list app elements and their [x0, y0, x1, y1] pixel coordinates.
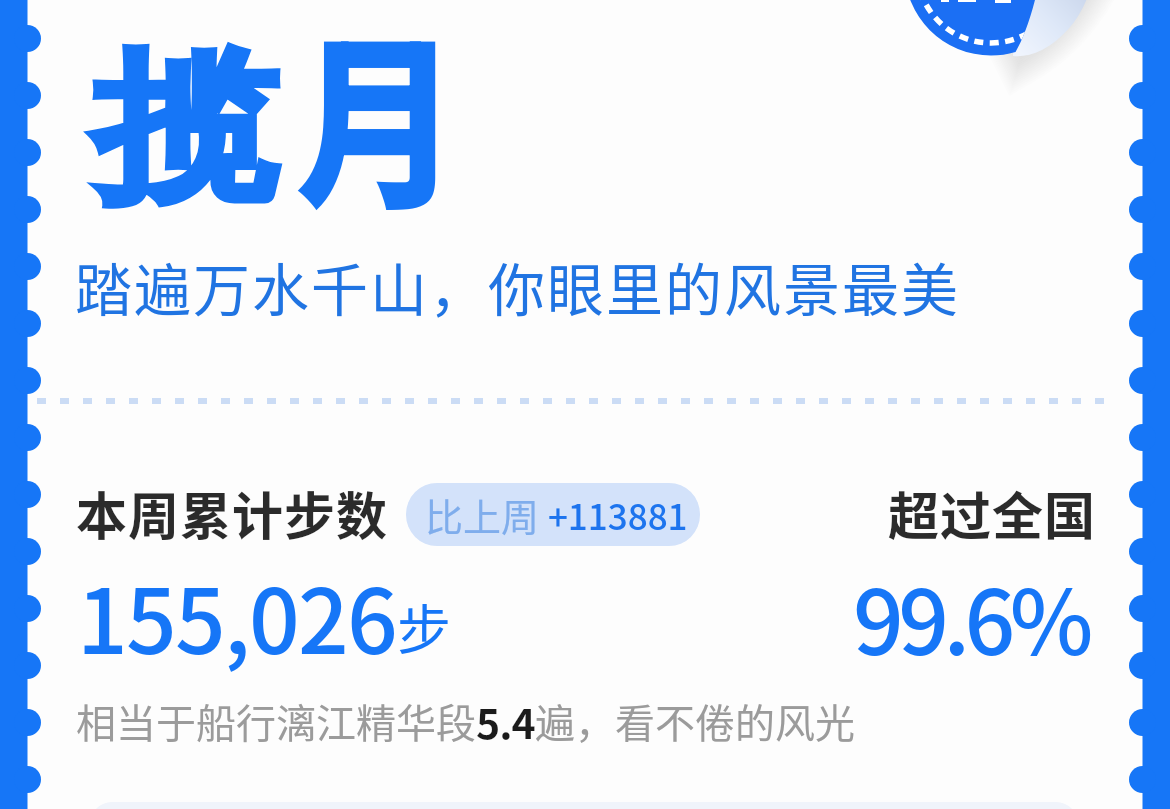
- staticText: 步: [397, 587, 451, 665]
- staticText: 比上周: [425, 487, 540, 542]
- staticText: 99.6%: [853, 552, 1088, 681]
- other: Activity badge: [0, 0, 1170, 809]
- staticText: 揽: [92, 27, 277, 232]
- staticText: 遍，看不倦的风光: [535, 692, 855, 750]
- staticText: 超过全国: [888, 476, 1097, 550]
- staticText: 踏遍万水千山，你眼里的风景最美: [75, 245, 960, 328]
- staticText: 5.4: [476, 691, 535, 750]
- staticText: 本周累计步数: [76, 476, 389, 550]
- staticText: 相当于船行漓江精华段: [76, 692, 476, 750]
- staticText: +113881: [540, 489, 688, 540]
- button[interactable]: 比上周: [406, 483, 700, 546]
- staticText: 155,026: [77, 551, 397, 680]
- staticText: 月: [295, 0, 461, 245]
